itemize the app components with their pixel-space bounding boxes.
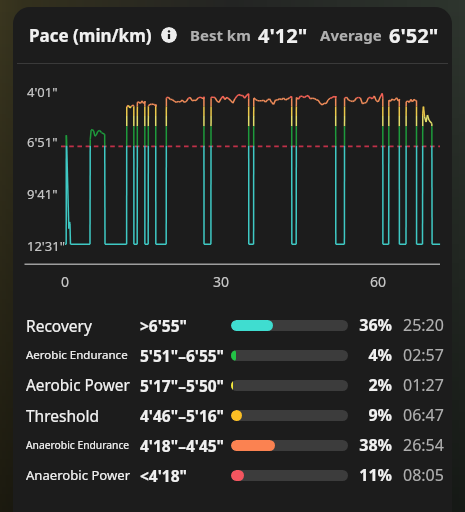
staticText: Best km [190,25,251,45]
staticText: 06:47 [403,404,444,426]
staticText: 6'51" [27,133,58,151]
staticText: Average [320,25,382,45]
button[interactable]: Aerobic Power [13,370,452,400]
staticText: Aerobic Power [26,375,130,396]
staticText: 9'41" [27,185,58,203]
staticText: Aerobic Endurance [26,347,128,363]
staticText: 9% [348,404,392,426]
staticText: 30 [205,272,237,291]
staticText: 11% [348,464,392,486]
staticText: 36% [348,314,392,336]
staticText: 2% [348,374,392,396]
staticText: 02:57 [403,344,444,366]
staticText: >6'55" [140,315,188,336]
button[interactable]: Anaerobic Endurance [13,430,452,460]
staticText: 60 [362,272,394,291]
staticText: 12'31" [27,237,65,255]
staticText: Pace (min/km) [29,24,152,47]
staticText: Threshold [26,405,99,426]
button[interactable]: Info [161,27,177,43]
staticText: Anaerobic Power [26,466,131,484]
staticText: 4'01" [27,83,58,101]
button[interactable]: Recovery [13,310,452,340]
button[interactable]: Aerobic Endurance [13,340,452,370]
staticText: 01:27 [403,374,444,396]
button[interactable]: Threshold [13,400,452,430]
staticText: 4'12" [258,22,308,49]
staticText: 25:20 [403,314,444,336]
staticText: 5'17"–5'50" [140,375,225,396]
staticText: 08:05 [403,464,444,486]
staticText: 6'52" [389,22,439,49]
staticText: <4'18" [140,465,188,486]
staticText: 26:54 [403,434,444,456]
staticText: 4'18"–4'45" [140,435,225,456]
staticText: 4'46"–5'16" [140,405,225,426]
staticText: 38% [348,434,392,456]
staticText: 0 [49,272,81,291]
staticText: Anaerobic Endurance [26,438,130,452]
staticText: 5'51"–6'55" [140,345,225,366]
staticText: Recovery [26,315,92,336]
button[interactable]: Anaerobic Power [13,460,452,490]
staticText: 4% [348,344,392,366]
